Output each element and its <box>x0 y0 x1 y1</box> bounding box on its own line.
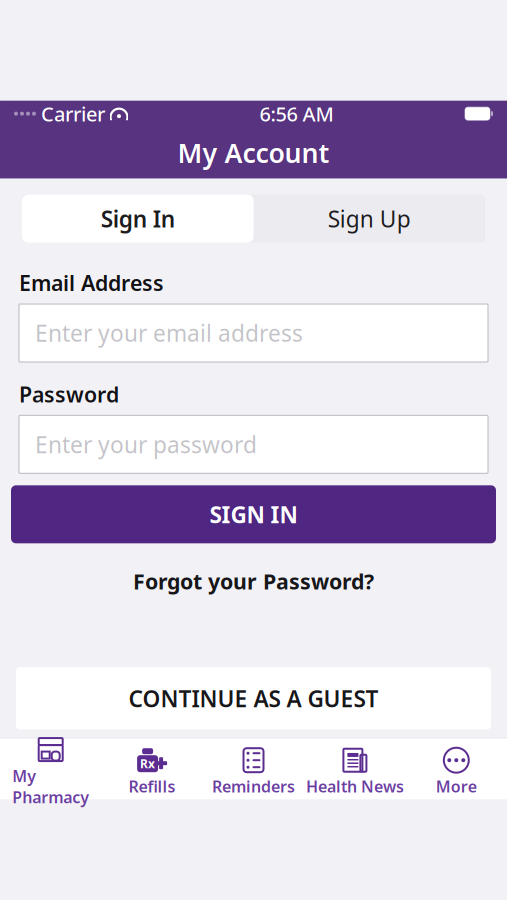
staticText: Refills <box>129 776 176 797</box>
button[interactable]: Sign In <box>22 195 253 243</box>
button[interactable]: Reminders <box>203 745 304 799</box>
button[interactable]: My Pharmacy <box>0 745 101 799</box>
staticText: My Pharmacy <box>12 765 89 808</box>
button[interactable]: Sign Up <box>253 195 485 243</box>
staticText: Enter your email address <box>35 318 303 348</box>
staticText: Password <box>19 380 119 408</box>
staticText: Health News <box>306 776 404 797</box>
button[interactable]: CONTINUE AS A GUEST <box>16 667 491 729</box>
button[interactable]: Enter your password <box>19 415 488 473</box>
staticText: Sign In <box>101 204 175 234</box>
button[interactable]: SIGN IN <box>11 485 496 543</box>
button[interactable]: Forgot your Password? <box>123 561 384 601</box>
staticText: Sign Up <box>328 204 411 234</box>
staticText: SIGN IN <box>209 499 297 529</box>
button[interactable]: Rx <box>101 745 203 799</box>
staticText: Enter your password <box>35 429 257 459</box>
button[interactable]: More <box>406 745 507 799</box>
staticText: More <box>436 776 477 797</box>
button[interactable]: Health News <box>304 745 406 799</box>
staticText: Email Address <box>19 269 164 297</box>
staticText: Forgot your Password? <box>133 567 374 595</box>
button[interactable]: Enter your email address <box>19 304 488 362</box>
staticText: My Account <box>177 135 329 170</box>
staticText: Rx <box>140 756 155 772</box>
staticText: Reminders <box>212 776 295 797</box>
staticText: CONTINUE AS A GUEST <box>128 683 378 713</box>
staticText: 6:56 AM <box>259 100 333 127</box>
staticText: Carrier <box>41 100 105 127</box>
